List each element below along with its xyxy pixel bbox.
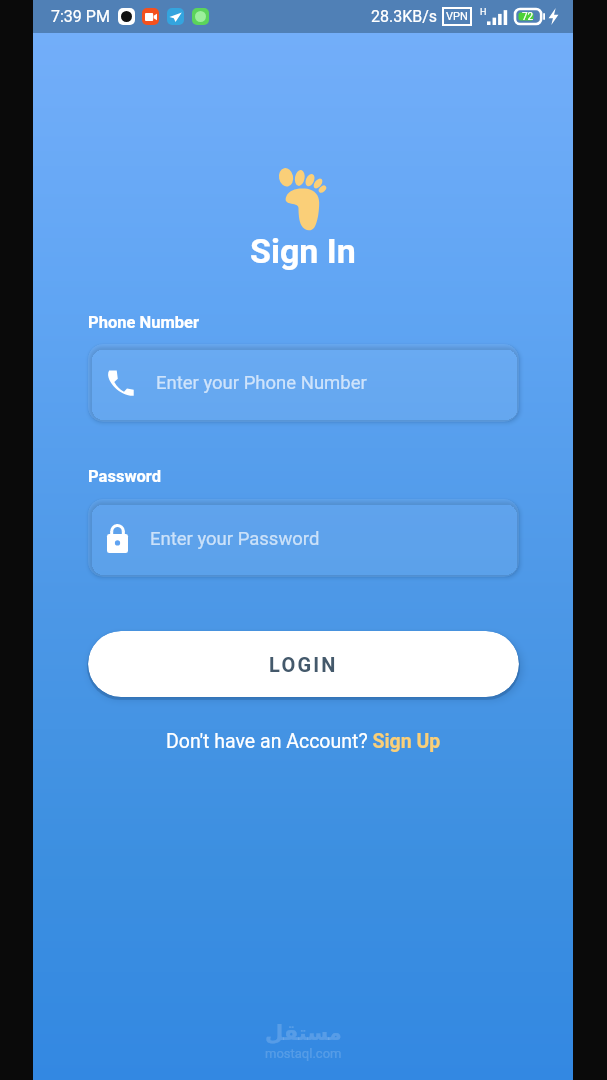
staticText: Enter your Phone Number [156, 372, 367, 394]
button[interactable]: Password [88, 499, 519, 577]
button[interactable]: Don't have an Account? Sign Up [166, 730, 441, 753]
staticText: H [480, 7, 487, 18]
staticText: Sign In [250, 231, 356, 271]
staticText: Phone Number [88, 313, 199, 332]
other: Password [107, 524, 128, 553]
staticText: LOGIN [269, 653, 338, 676]
staticText: mostaql.com [265, 1046, 342, 1061]
staticText: مستقل [265, 1021, 342, 1045]
staticText: VPN [446, 10, 468, 23]
staticText: Enter your Password [150, 528, 320, 550]
button[interactable]: Phone [88, 344, 519, 422]
staticText: 72 [522, 11, 534, 23]
staticText: 7:39 PM [51, 7, 110, 26]
button[interactable]: LOGIN [88, 631, 519, 697]
staticText: Password [88, 467, 162, 486]
staticText: 28.3KB/s [371, 7, 438, 26]
other: Phone [107, 370, 134, 396]
